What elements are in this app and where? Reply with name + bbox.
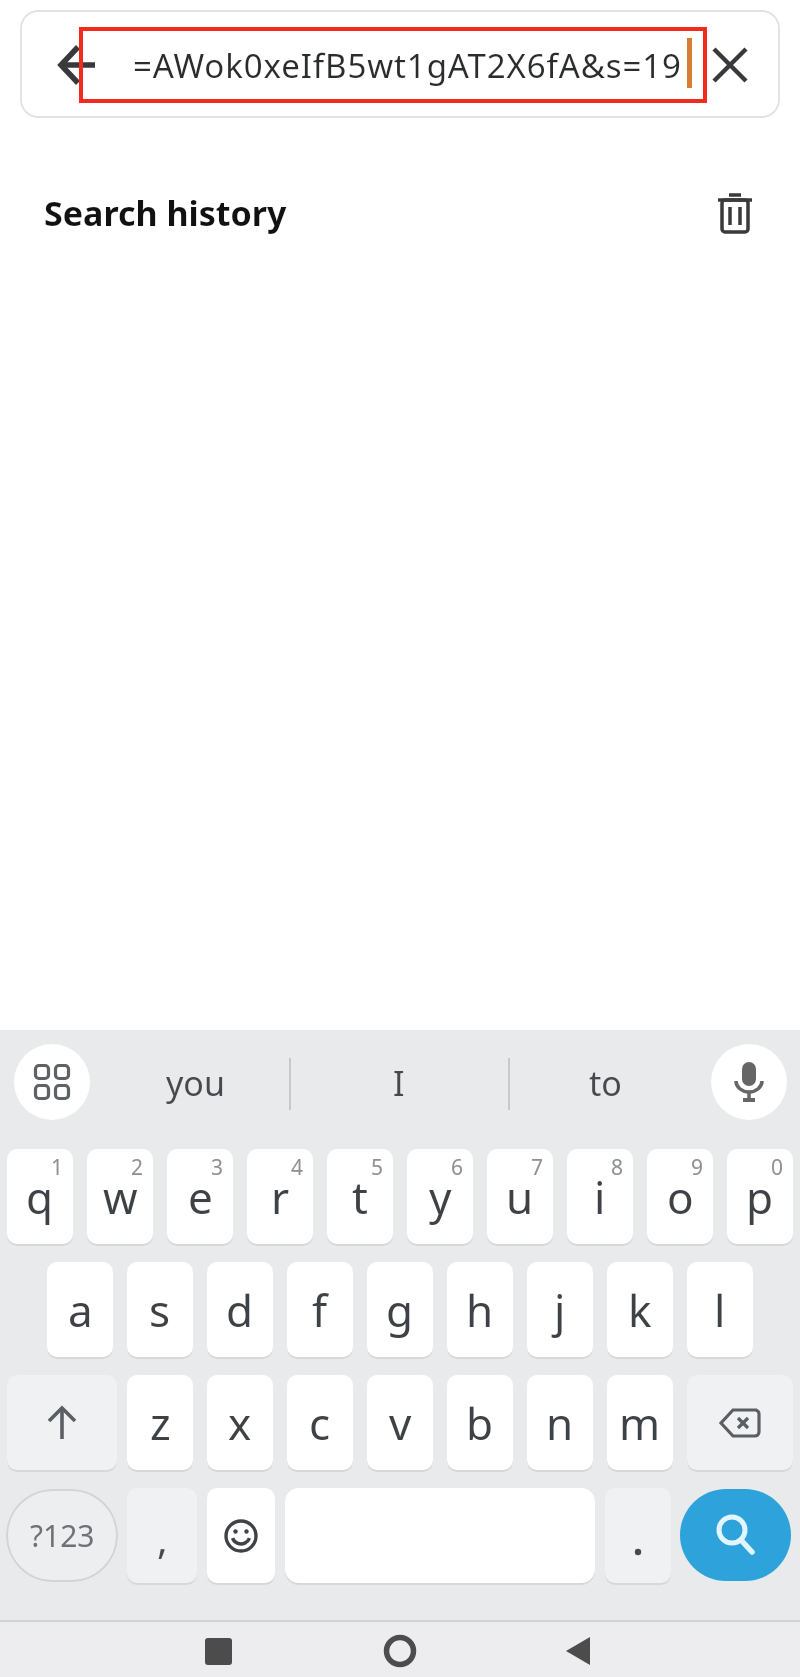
button[interactable]: w xyxy=(87,1149,153,1244)
staticText: l xyxy=(714,1280,726,1340)
staticText: t xyxy=(352,1167,368,1227)
button[interactable]: x xyxy=(207,1375,273,1470)
staticText: n xyxy=(546,1393,574,1453)
staticText: 8 xyxy=(611,1153,624,1182)
button[interactable]: to xyxy=(520,1050,690,1116)
staticText: I xyxy=(393,1060,405,1106)
staticText: m xyxy=(619,1393,661,1453)
staticText: 3 xyxy=(211,1153,224,1182)
staticText: x xyxy=(228,1393,252,1453)
staticText: ?123 xyxy=(30,1515,95,1556)
staticText: p xyxy=(746,1167,774,1227)
staticText: 1 xyxy=(51,1153,64,1182)
staticText: 4 xyxy=(291,1153,304,1182)
button[interactable]: d xyxy=(207,1262,273,1357)
button[interactable]: q xyxy=(7,1149,73,1244)
button[interactable]: s xyxy=(127,1262,193,1357)
button[interactable]: m xyxy=(607,1375,673,1470)
staticText: to xyxy=(589,1060,622,1106)
staticText: v xyxy=(389,1393,412,1453)
button[interactable]: u xyxy=(487,1149,553,1244)
staticText: d xyxy=(226,1280,254,1340)
staticText: 7 xyxy=(531,1153,544,1182)
button[interactable]: p xyxy=(727,1149,793,1244)
staticText: g xyxy=(386,1280,414,1340)
staticText: j xyxy=(554,1280,566,1340)
staticText: 9 xyxy=(691,1153,704,1182)
button[interactable]: f xyxy=(287,1262,353,1357)
staticText: f xyxy=(312,1280,328,1340)
staticText: o xyxy=(667,1167,694,1227)
staticText: e xyxy=(188,1167,213,1227)
button[interactable] xyxy=(550,1628,606,1674)
staticText: q xyxy=(26,1167,54,1227)
staticText: 2 xyxy=(131,1153,144,1182)
staticText: y xyxy=(429,1167,452,1227)
button[interactable]: l xyxy=(687,1262,753,1357)
button[interactable]: v xyxy=(367,1375,433,1470)
button[interactable]: I xyxy=(300,1050,497,1116)
button[interactable] xyxy=(190,1628,246,1674)
staticText: you xyxy=(166,1060,225,1106)
button[interactable]: g xyxy=(367,1262,433,1357)
button[interactable]: z xyxy=(127,1375,193,1470)
staticText: s xyxy=(149,1280,171,1340)
staticText: b xyxy=(466,1393,494,1453)
button[interactable] xyxy=(58,45,98,85)
button[interactable]: , xyxy=(127,1488,197,1583)
staticText: c xyxy=(309,1393,331,1453)
button[interactable] xyxy=(680,1489,791,1581)
button[interactable]: h xyxy=(447,1262,513,1357)
button[interactable]: r xyxy=(247,1149,313,1244)
staticText: , xyxy=(157,1511,168,1565)
button[interactable]: o xyxy=(647,1149,713,1244)
staticText: z xyxy=(150,1393,171,1453)
staticText: w xyxy=(103,1167,138,1227)
button[interactable]: e xyxy=(167,1149,233,1244)
staticText: k xyxy=(628,1280,652,1340)
staticText: 0 xyxy=(771,1153,784,1182)
staticText: r xyxy=(271,1167,290,1227)
button[interactable]: i xyxy=(567,1149,633,1244)
button[interactable]: c xyxy=(287,1375,353,1470)
button[interactable] xyxy=(207,1488,275,1583)
staticText: i xyxy=(594,1167,606,1227)
button[interactable]: b xyxy=(447,1375,513,1470)
button[interactable]: a xyxy=(47,1262,113,1357)
button[interactable]: n xyxy=(527,1375,593,1470)
button[interactable] xyxy=(687,1375,793,1470)
button[interactable] xyxy=(714,192,756,234)
button[interactable]: you xyxy=(120,1050,270,1116)
button[interactable] xyxy=(711,1044,787,1120)
staticText: a xyxy=(68,1280,93,1340)
button[interactable]: j xyxy=(527,1262,593,1357)
button[interactable]: t xyxy=(327,1149,393,1244)
staticText: h xyxy=(466,1280,494,1340)
button[interactable] xyxy=(14,1044,90,1120)
button[interactable]: k xyxy=(607,1262,673,1357)
button[interactable]: y xyxy=(407,1149,473,1244)
staticText: u xyxy=(506,1167,534,1227)
button[interactable] xyxy=(712,47,748,83)
button[interactable] xyxy=(372,1628,428,1674)
staticText: Search history xyxy=(44,190,287,236)
button[interactable]: ?123 xyxy=(6,1489,118,1582)
button[interactable] xyxy=(605,1488,671,1583)
staticText: 6 xyxy=(451,1153,464,1182)
staticText: =AWok0xeIfB5wt1gAT2X6fA&s=19 xyxy=(133,43,682,88)
staticText: 5 xyxy=(371,1153,384,1182)
button[interactable] xyxy=(7,1375,117,1470)
